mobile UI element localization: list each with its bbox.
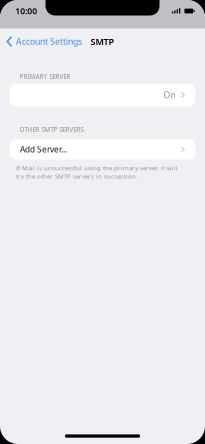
staticText: OTHER SMTP SERVERS (19, 125, 83, 134)
staticText: If Mail is unsuccessful using the primar… (16, 164, 178, 180)
staticText: SMTP (90, 35, 114, 48)
button[interactable]: Account Settings (0, 28, 88, 54)
staticText: On (163, 89, 175, 101)
staticText: 10:00 (15, 5, 37, 17)
staticText: PRIMARY SERVER (19, 72, 70, 81)
staticText: Add Server... (20, 144, 67, 155)
button[interactable]: Add Server... (10, 139, 195, 159)
staticText: Account Settings (16, 36, 82, 47)
button[interactable]: On (10, 84, 195, 106)
